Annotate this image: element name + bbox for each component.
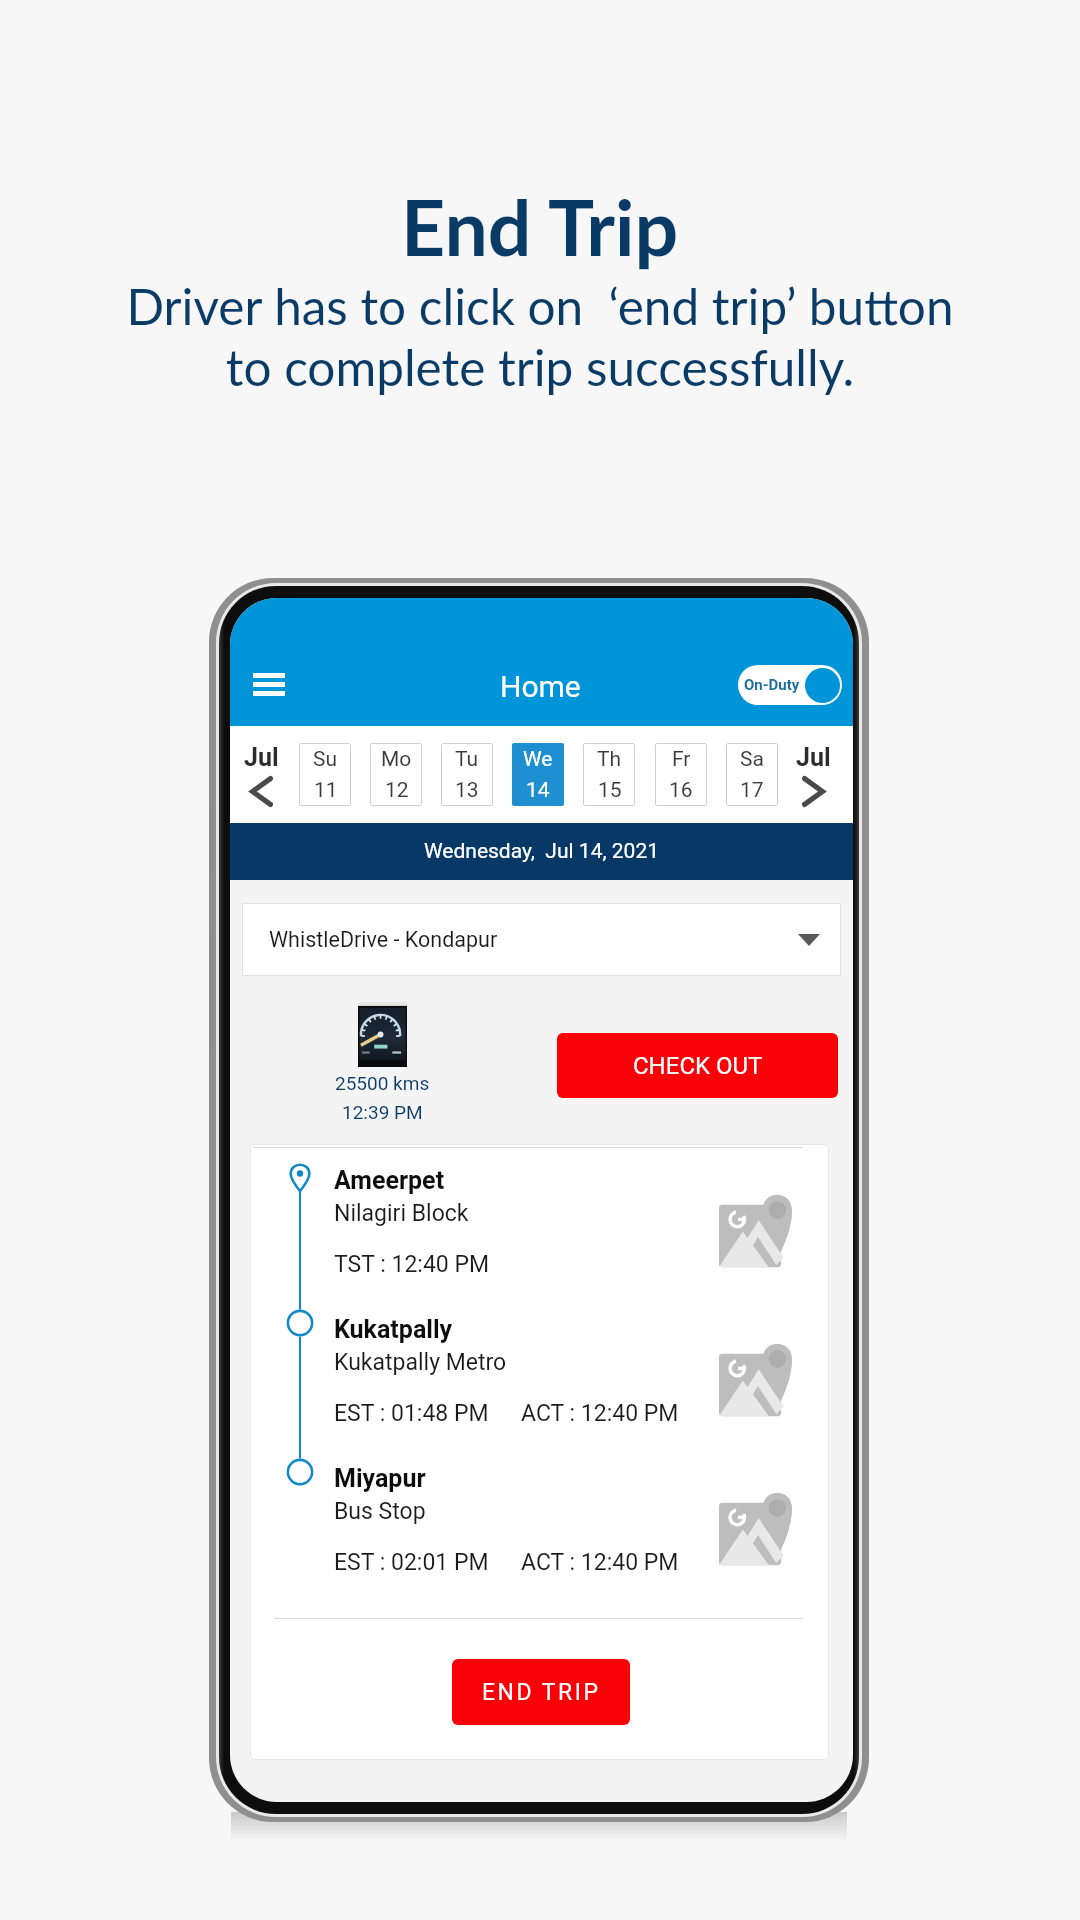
staticText: WhistleDrive - Kondapur [269,927,498,952]
button[interactable]: Open map [719,1344,788,1417]
staticText: EST : 01:48 PM [334,1400,489,1427]
button[interactable]: Sa [726,743,778,806]
staticText: 17 [740,778,764,803]
button[interactable]: Tu [441,743,493,806]
button[interactable]: Ameerpet [250,1162,829,1311]
button[interactable]: We [512,743,564,806]
button[interactable]: WhistleDrive - Kondapur [242,903,841,976]
staticText: ACT : 12:40 PM [521,1400,679,1427]
staticText: 15 [598,778,622,803]
staticText: EST : 02:01 PM [334,1549,489,1576]
staticText: 12:39 PM [342,1101,423,1123]
staticText: TST : 12:40 PM [334,1251,490,1278]
staticText: Kukatpally Metro [334,1349,507,1376]
button[interactable]: Kukatpally [250,1311,829,1460]
staticText: 11 [314,778,338,803]
button[interactable]: Th [583,743,635,806]
button[interactable]: Previous month [239,743,283,807]
staticText: Tu [455,747,479,772]
staticText: Jul [244,743,279,772]
button[interactable]: Mo [370,743,422,806]
staticText: CHECK OUT [633,1052,763,1080]
staticText: Fr [672,747,691,772]
staticText: End Trip [401,180,679,272]
staticText: 16 [669,778,693,803]
button[interactable]: On-Duty [738,665,842,705]
button[interactable]: Open map [719,1493,788,1566]
button[interactable]: Fr [655,743,707,806]
staticText: 25500 kms [335,1072,430,1094]
staticText: Driver has to click on ‘end trip’ button… [126,276,954,397]
button[interactable]: Su [299,743,351,806]
staticText: Bus Stop [334,1498,426,1525]
staticText: Home [500,669,581,704]
staticText: ACT : 12:40 PM [521,1549,679,1576]
staticText: Wednesday, Jul 14, 2021 [424,839,659,864]
button[interactable]: CHECK OUT [557,1033,838,1098]
staticText: 13 [455,778,479,803]
staticText: Th [597,747,622,772]
staticText: Nilagiri Block [334,1200,469,1227]
button[interactable]: Open map [719,1195,788,1268]
staticText: Ameerpet [334,1166,445,1195]
button[interactable]: END TRIP [452,1659,630,1725]
staticText: 12 [385,778,409,803]
staticText: Kukatpally [334,1315,453,1344]
staticText: Mo [381,747,412,772]
staticText: Miyapur [334,1464,426,1493]
button[interactable]: Miyapur [250,1460,829,1609]
staticText: 14 [526,778,550,803]
staticText: END TRIP [482,1679,601,1706]
staticText: Sa [740,747,764,772]
button[interactable]: Menu [238,658,300,710]
staticText: We [523,747,553,772]
staticText: Su [313,747,338,772]
staticText: Jul [796,743,831,772]
staticText: On-Duty [744,676,800,694]
button[interactable]: Next month [791,743,835,807]
